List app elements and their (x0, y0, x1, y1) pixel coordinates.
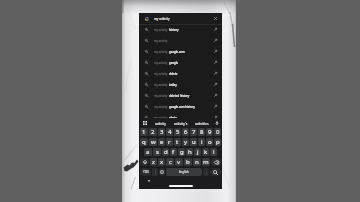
button[interactable]: activity (150, 118, 170, 127)
button[interactable]: o (206, 138, 213, 146)
button[interactable]: t (174, 138, 181, 146)
button[interactable]: w (149, 138, 157, 146)
button[interactable]: my activity (139, 57, 222, 68)
button[interactable]: Backspace (211, 158, 221, 166)
staticText: my activity (154, 17, 170, 21)
button[interactable]: Clear search (209, 13, 222, 24)
staticText: activity (155, 121, 166, 125)
button[interactable]: Insert suggestion (209, 90, 222, 101)
button[interactable]: m (202, 158, 210, 166)
button[interactable]: Period (203, 168, 209, 176)
button[interactable]: a (144, 148, 152, 156)
button[interactable]: s (153, 148, 161, 156)
staticText: my activity (154, 28, 169, 32)
button[interactable]: Insert suggestion (209, 79, 222, 90)
staticText: ?123 (143, 170, 149, 174)
button[interactable]: g (178, 148, 185, 156)
button[interactable]: 0 (214, 128, 221, 136)
button[interactable]: 8 (198, 128, 205, 136)
button[interactable]: my activity (139, 13, 222, 24)
button[interactable]: Emoji (159, 168, 165, 176)
staticText: p (216, 138, 220, 146)
button[interactable]: i (198, 138, 205, 146)
button[interactable]: Insert suggestion (209, 101, 222, 112)
staticText: k (204, 148, 208, 156)
button[interactable]: Insert suggestion (209, 112, 222, 123)
button[interactable]: my activity (139, 101, 222, 112)
staticText: my activity (154, 50, 169, 54)
button[interactable]: 5 (174, 128, 181, 136)
button[interactable]: my activity (139, 68, 222, 79)
staticText: w (151, 138, 156, 146)
button[interactable]: v (175, 158, 183, 166)
button[interactable]: English (166, 168, 202, 176)
staticText: deleted history (169, 94, 190, 98)
staticText: s (156, 148, 159, 156)
staticText: 5 (176, 128, 180, 136)
button[interactable]: Insert suggestion (209, 68, 222, 79)
staticText: m (203, 158, 209, 166)
button[interactable]: my activity (139, 79, 222, 90)
button[interactable]: Insert suggestion (209, 24, 222, 35)
button[interactable]: my activity (139, 112, 222, 123)
button[interactable]: 2 (149, 128, 157, 136)
button[interactable]: 6 (182, 128, 189, 136)
button[interactable]: z (150, 158, 157, 166)
staticText: i (201, 138, 203, 146)
button[interactable]: p (214, 138, 221, 146)
button[interactable]: x (158, 158, 165, 166)
staticText: j (197, 148, 199, 156)
button[interactable]: j (194, 148, 201, 156)
button[interactable]: ?123 (140, 168, 151, 176)
staticText: q (142, 138, 146, 146)
staticText: v (177, 158, 181, 166)
button[interactable]: n (193, 158, 201, 166)
button[interactable]: c (166, 158, 174, 166)
staticText: google.com (169, 50, 185, 54)
button[interactable]: 7 (190, 128, 197, 136)
staticText: l (213, 148, 215, 156)
button[interactable]: l (210, 148, 217, 156)
button[interactable]: r (166, 138, 173, 146)
staticText: history (169, 28, 179, 32)
staticText: e (160, 138, 164, 146)
button[interactable]: activities (191, 118, 212, 127)
button[interactable]: Insert suggestion (209, 57, 222, 68)
button[interactable]: my activity (139, 24, 222, 35)
staticText: 8 (200, 128, 204, 136)
staticText: English (179, 170, 189, 174)
staticText: google (169, 61, 179, 65)
button[interactable]: u (190, 138, 197, 146)
button[interactable]: q (140, 138, 148, 146)
staticText: n (195, 158, 199, 166)
staticText: 2 (151, 128, 155, 136)
button[interactable]: my activity (139, 90, 222, 101)
button[interactable]: 3 (158, 128, 165, 136)
button[interactable]: e (158, 138, 165, 146)
staticText: f (172, 148, 175, 156)
button[interactable]: k (202, 148, 209, 156)
staticText: delete (169, 72, 178, 76)
button[interactable]: 4 (166, 128, 173, 136)
button[interactable]: d (162, 148, 169, 156)
button[interactable]: Voice input (212, 118, 222, 127)
button[interactable]: my activity (139, 35, 222, 46)
button[interactable]: Shift (140, 158, 149, 166)
button[interactable]: Comma (152, 168, 158, 176)
button[interactable]: Insert suggestion (209, 35, 222, 46)
staticText: b (186, 158, 190, 166)
button[interactable]: Search (210, 168, 221, 176)
staticText: my activity (154, 61, 169, 65)
button[interactable]: b (184, 158, 192, 166)
button[interactable]: 1 (140, 128, 148, 136)
button[interactable]: y (182, 138, 189, 146)
staticText: x (160, 158, 164, 166)
button[interactable]: f (170, 148, 177, 156)
button[interactable]: my activity (139, 46, 222, 57)
button[interactable]: 9 (206, 128, 213, 136)
staticText: d (164, 148, 168, 156)
button[interactable]: Toolbar (139, 118, 150, 127)
button[interactable]: h (186, 148, 193, 156)
button[interactable]: Insert suggestion (209, 46, 222, 57)
button[interactable]: activity's (170, 118, 191, 127)
